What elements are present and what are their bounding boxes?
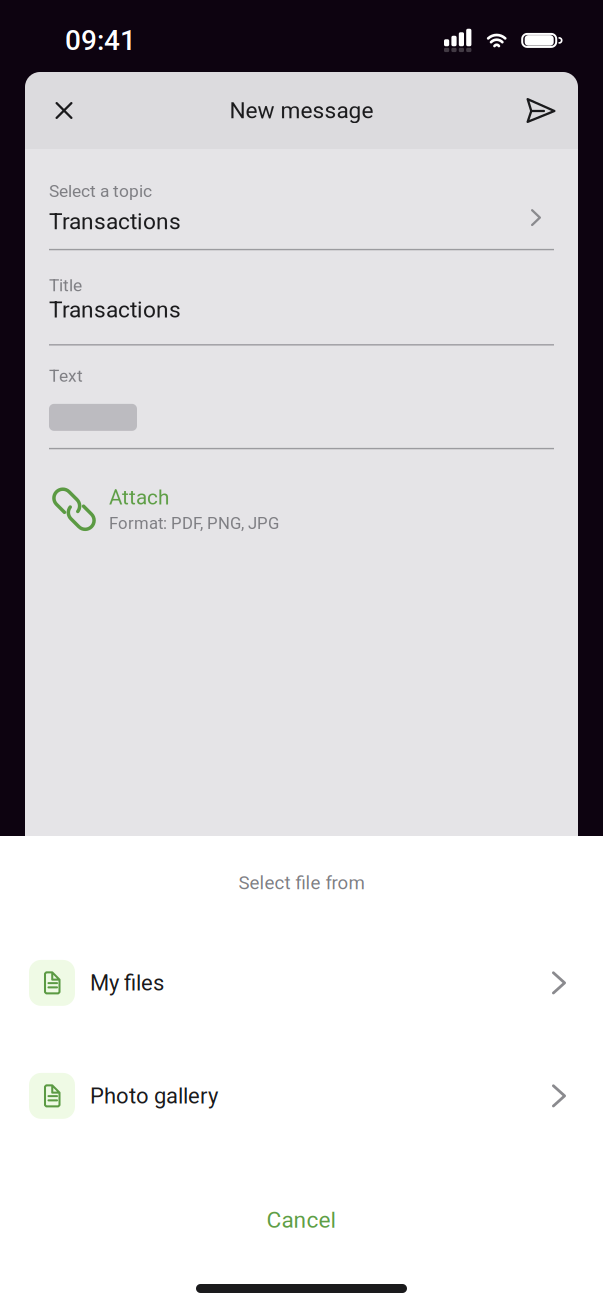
staticText: Format: PDF, PNG, JPG <box>109 514 279 533</box>
staticText: Transactions <box>49 297 181 323</box>
staticText: Attach <box>109 485 169 510</box>
staticText: Select file from <box>238 872 364 894</box>
staticText: New message <box>229 97 373 124</box>
staticText: Cancel <box>266 1207 336 1233</box>
button[interactable]: Close <box>42 88 86 132</box>
staticText: 09:41 <box>65 24 136 57</box>
staticText: My files <box>90 970 164 996</box>
button[interactable]: Cancel <box>0 1196 603 1244</box>
staticText: Transactions <box>49 208 181 235</box>
button[interactable]: My files <box>0 937 603 1029</box>
button[interactable]: Transactions <box>49 208 554 235</box>
staticText: Photo gallery <box>90 1083 218 1109</box>
button[interactable]: Photo gallery <box>0 1050 603 1142</box>
button[interactable]: Send <box>519 88 563 132</box>
staticText: Select a topic <box>49 181 152 201</box>
staticText: Title <box>49 275 82 296</box>
staticText: Text <box>49 366 83 386</box>
button[interactable]: Attach <box>49 484 554 534</box>
